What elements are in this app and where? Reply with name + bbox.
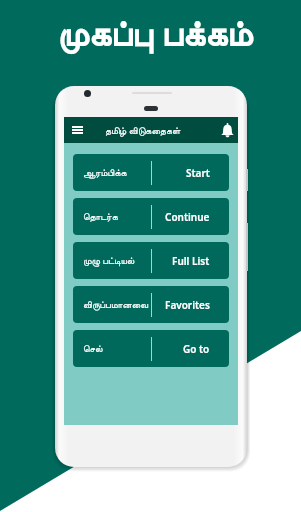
button[interactable]: விருப்பமானவை	[73, 286, 229, 323]
button[interactable]: தொடர்க	[73, 198, 229, 235]
button[interactable]: முழு பட்டியல்	[73, 242, 229, 279]
staticText: செல்	[83, 344, 103, 353]
button[interactable]: Menu	[66, 117, 88, 143]
staticText: தமிழ் விடுகதைகள்	[105, 124, 181, 137]
staticText: விருப்பமானவை	[83, 300, 148, 309]
staticText: Go to	[183, 342, 210, 356]
button[interactable]: Notifications	[216, 117, 238, 143]
staticText: Full List	[172, 254, 210, 268]
staticText: முகப்பு பக்கம்	[57, 9, 252, 57]
button[interactable]: செல்	[73, 330, 229, 367]
staticText: ஆரம்பிக்க	[83, 168, 127, 177]
button[interactable]: ஆரம்பிக்க	[73, 154, 229, 191]
staticText: தொடர்க	[83, 212, 118, 221]
staticText: Favorites	[165, 298, 210, 312]
staticText: Continue	[165, 210, 210, 224]
staticText: Start	[186, 166, 210, 180]
staticText: முழு பட்டியல்	[83, 254, 135, 267]
